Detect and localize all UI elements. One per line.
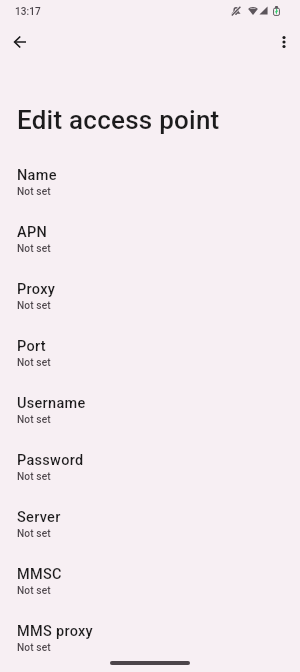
- staticText: Not set: [17, 186, 51, 198]
- staticText: Not set: [17, 414, 51, 426]
- button[interactable]: Server: [0, 498, 300, 550]
- button[interactable]: Navigate up: [0, 22, 40, 62]
- button[interactable]: MMS proxy: [0, 612, 300, 664]
- staticText: Password: [17, 452, 84, 469]
- button[interactable]: Name: [0, 156, 300, 208]
- staticText: MMS proxy: [17, 623, 94, 640]
- button[interactable]: More options: [264, 22, 300, 62]
- staticText: Not set: [17, 300, 51, 312]
- staticText: Not set: [17, 243, 51, 255]
- staticText: Proxy: [17, 281, 56, 298]
- button[interactable]: Port: [0, 327, 300, 379]
- staticText: Not set: [17, 528, 51, 540]
- staticText: APN: [17, 224, 48, 241]
- staticText: Not set: [17, 357, 51, 369]
- staticText: Port: [17, 338, 46, 355]
- button[interactable]: Password: [0, 441, 300, 493]
- button[interactable]: Username: [0, 384, 300, 436]
- staticText: Not set: [17, 642, 51, 654]
- staticText: Server: [17, 509, 61, 526]
- staticText: MMSC: [17, 566, 62, 583]
- staticText: Edit access point: [17, 105, 220, 135]
- button[interactable]: APN: [0, 213, 300, 265]
- staticText: Name: [17, 167, 57, 184]
- staticText: Username: [17, 395, 86, 412]
- staticText: Not set: [17, 471, 51, 483]
- staticText: Not set: [17, 585, 51, 597]
- staticText: 13:17: [15, 6, 41, 18]
- button[interactable]: Proxy: [0, 270, 300, 322]
- button[interactable]: MMSC: [0, 555, 300, 607]
